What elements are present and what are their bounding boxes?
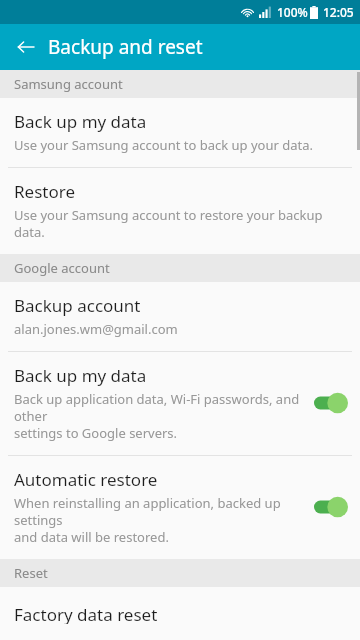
staticText: Google account (14, 259, 110, 277)
staticText: Backup and reset (48, 34, 203, 60)
staticText: 12:05 (323, 4, 354, 20)
staticText: Restore (14, 180, 75, 203)
staticText: Use your Samsung account to restore your… (14, 206, 346, 241)
staticText: When reinstalling an application, backed… (14, 494, 306, 546)
button[interactable]: Back up my data (0, 98, 360, 167)
button[interactable]: Toggle (314, 392, 348, 414)
button[interactable]: Automatic restore (0, 456, 360, 559)
staticText: 100% (277, 4, 308, 20)
staticText: Factory data reset (14, 603, 158, 624)
button[interactable]: Restore (0, 168, 360, 254)
staticText: Use your Samsung account to back up your… (14, 136, 313, 154)
staticText: Automatic restore (14, 468, 158, 491)
staticText: Reset (14, 564, 48, 582)
button[interactable]: Toggle (314, 496, 348, 518)
staticText: Backup account (14, 294, 141, 317)
button[interactable]: Factory data reset (0, 587, 360, 640)
staticText: Samsung account (14, 75, 123, 93)
button[interactable]: Back up my data (0, 352, 360, 455)
staticText: Back up my data (14, 110, 147, 133)
button[interactable]: Backup account (0, 282, 360, 351)
staticText: Back up my data (14, 364, 147, 387)
staticText: alan.jones.wm@gmail.com (14, 320, 178, 338)
button[interactable]: Back (6, 27, 46, 67)
staticText: Back up application data, Wi-Fi password… (14, 390, 306, 442)
